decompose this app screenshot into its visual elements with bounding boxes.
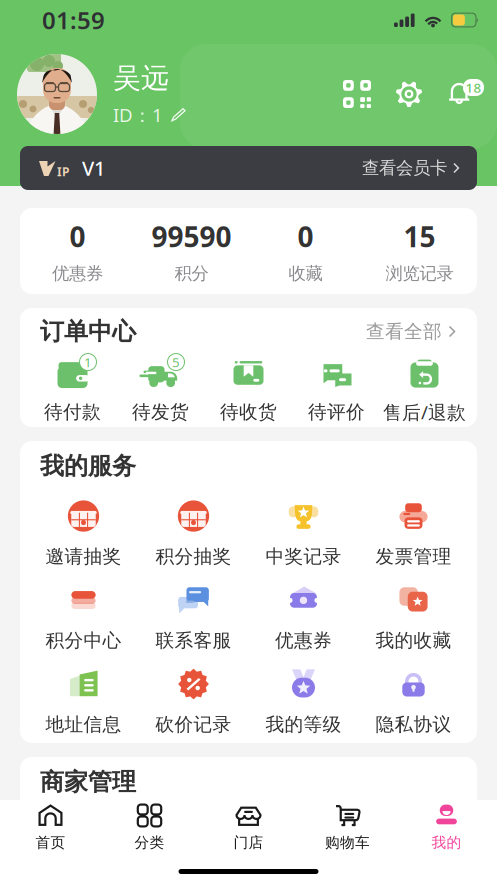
button[interactable]: 积分中心 bbox=[28, 582, 138, 652]
button[interactable]: 中奖记录 bbox=[248, 498, 358, 568]
button[interactable]: 我的收藏 bbox=[358, 582, 468, 652]
staticText: 积分抽奖 bbox=[155, 545, 231, 568]
staticText: 0 bbox=[297, 218, 313, 255]
button[interactable]: 首页 bbox=[1, 802, 100, 852]
staticText: 吴远 bbox=[113, 61, 169, 95]
staticText: 积分 bbox=[174, 263, 208, 284]
staticText: 待收货 bbox=[220, 400, 277, 423]
button[interactable]: 0 bbox=[20, 208, 134, 294]
staticText: 待发货 bbox=[132, 400, 189, 423]
button[interactable]: 门店 bbox=[199, 802, 298, 852]
button[interactable]: 积分抽奖 bbox=[138, 498, 248, 568]
staticText: 01:59 bbox=[42, 4, 105, 36]
staticText: 我的 bbox=[431, 833, 461, 851]
staticText: 查看会员卡 bbox=[362, 157, 447, 179]
staticText: 中奖记录 bbox=[265, 545, 341, 568]
staticText: 邀请抽奖 bbox=[45, 545, 121, 568]
staticText: 99590 bbox=[151, 218, 231, 255]
staticText: V1 bbox=[82, 155, 105, 181]
button[interactable]: 1 bbox=[28, 357, 116, 423]
button[interactable]: 发票管理 bbox=[358, 498, 468, 568]
button[interactable]: 5 bbox=[116, 357, 204, 423]
staticText: 1 bbox=[84, 353, 92, 371]
button[interactable]: 售后/退款 bbox=[380, 357, 468, 424]
staticText: 商家管理 bbox=[40, 767, 136, 797]
button[interactable]: 扫一扫 bbox=[343, 80, 371, 108]
button[interactable]: 设置 bbox=[395, 80, 423, 108]
staticText: 隐私协议 bbox=[375, 713, 451, 736]
staticText: ID：1 bbox=[113, 102, 163, 127]
button[interactable]: 待评价 bbox=[292, 357, 380, 423]
staticText: 首页 bbox=[35, 833, 65, 851]
button[interactable]: 待收货 bbox=[204, 357, 292, 423]
staticText: 我的等级 bbox=[265, 713, 341, 736]
staticText: 优惠券 bbox=[275, 629, 332, 652]
button[interactable]: 消息通知 bbox=[447, 79, 477, 109]
button[interactable]: 联系客服 bbox=[138, 582, 248, 652]
staticText: 待评价 bbox=[308, 400, 365, 423]
staticText: 门店 bbox=[233, 833, 263, 851]
button[interactable]: 购物车 bbox=[298, 802, 397, 852]
staticText: 我的服务 bbox=[40, 451, 136, 481]
button[interactable]: 隐私协议 bbox=[358, 666, 468, 736]
button[interactable]: 15 bbox=[362, 208, 476, 294]
staticText: 查看全部 bbox=[366, 320, 442, 343]
staticText: 优惠券 bbox=[52, 263, 103, 284]
staticText: IP bbox=[57, 163, 69, 179]
staticText: 售后/退款 bbox=[383, 400, 466, 424]
staticText: 购物车 bbox=[325, 833, 370, 851]
staticText: 0 bbox=[69, 218, 85, 255]
staticText: 订单中心 bbox=[40, 317, 136, 346]
staticText: 我的收藏 bbox=[375, 629, 451, 652]
button[interactable]: 0 bbox=[248, 208, 362, 294]
staticText: 发票管理 bbox=[375, 545, 451, 568]
staticText: 分类 bbox=[134, 833, 164, 851]
staticText: 5 bbox=[172, 353, 180, 371]
staticText: 收藏 bbox=[288, 263, 322, 284]
button[interactable]: 地址信息 bbox=[28, 666, 138, 736]
button[interactable]: 查看全部 bbox=[366, 320, 459, 343]
staticText: 18 bbox=[465, 79, 481, 96]
button[interactable]: 99590 bbox=[134, 208, 248, 294]
staticText: 积分中心 bbox=[45, 629, 121, 652]
button[interactable]: 我的等级 bbox=[248, 666, 358, 736]
staticText: 浏览记录 bbox=[385, 263, 453, 284]
staticText: 砍价记录 bbox=[155, 713, 231, 736]
staticText: 联系客服 bbox=[155, 629, 231, 652]
button[interactable]: 砍价记录 bbox=[138, 666, 248, 736]
button[interactable]: 优惠券 bbox=[248, 582, 358, 652]
button[interactable]: 分类 bbox=[100, 802, 199, 852]
button[interactable]: 我的 bbox=[397, 802, 496, 852]
button[interactable]: IP bbox=[20, 146, 477, 190]
staticText: 15 bbox=[403, 218, 435, 255]
button[interactable]: 邀请抽奖 bbox=[28, 498, 138, 568]
staticText: 地址信息 bbox=[45, 713, 121, 736]
staticText: 待付款 bbox=[44, 400, 101, 423]
